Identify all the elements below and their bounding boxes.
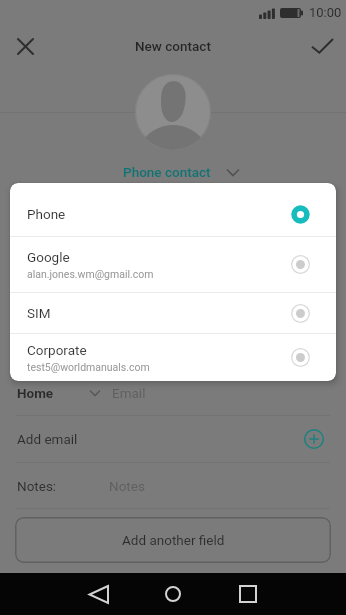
staticText: Add email — [17, 431, 78, 447]
staticText: Add another field — [122, 532, 225, 548]
staticText: Email — [112, 385, 146, 401]
staticText: test5@worldmanuals.com — [27, 361, 150, 373]
button[interactable] — [161, 582, 185, 606]
staticText: SIM — [27, 305, 51, 321]
button[interactable]: Add email — [0, 416, 346, 462]
button[interactable]: Google — [10, 237, 336, 292]
staticText: Notes — [109, 478, 145, 494]
button[interactable]: Phone — [10, 192, 336, 236]
staticText: Phone contact — [123, 164, 211, 180]
button[interactable]: SIM — [10, 293, 336, 333]
button[interactable] — [11, 32, 39, 60]
staticText: Google — [27, 249, 70, 265]
button[interactable] — [236, 582, 260, 606]
button[interactable] — [308, 32, 336, 60]
button[interactable]: Phone contact — [0, 150, 346, 194]
button[interactable]: Add another field — [15, 517, 331, 563]
button[interactable]: Corporate — [10, 334, 336, 381]
staticText: Notes: — [17, 478, 57, 494]
staticText: Phone — [27, 206, 66, 222]
button[interactable] — [86, 582, 110, 606]
staticText: Home — [17, 385, 54, 401]
button[interactable]: Notes: — [0, 463, 346, 508]
staticText: 10:00 — [309, 5, 342, 20]
staticText: New contact — [135, 38, 211, 54]
staticText: alan.jones.wm@gmail.com — [27, 268, 154, 280]
staticText: Corporate — [27, 342, 87, 358]
button[interactable]: Home — [0, 375, 346, 411]
